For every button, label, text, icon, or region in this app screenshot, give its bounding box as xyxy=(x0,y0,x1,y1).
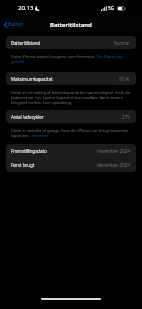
staticText: Først brugt xyxy=(11,162,35,168)
staticText: november 2024 xyxy=(97,148,130,154)
staticText: Batteri xyxy=(8,21,24,28)
staticText: 5G xyxy=(108,5,115,12)
staticText: 95 % xyxy=(119,76,130,82)
button[interactable]: Batteri xyxy=(0,19,29,30)
staticText: 20.13 xyxy=(18,4,34,12)
button[interactable]: Først brugt xyxy=(6,158,136,172)
staticText: Batteritilstand xyxy=(11,40,41,46)
staticText: Normal xyxy=(114,40,130,46)
staticText: december 2024 xyxy=(97,162,130,168)
button[interactable]: Fremstillingsdato xyxy=(6,144,136,158)
staticText: Batteritilstand xyxy=(50,21,92,29)
staticText: Antal ladecykler xyxy=(11,114,44,120)
button[interactable]: Batteritilstand xyxy=(6,36,136,49)
button[interactable]: Antal ladecykler xyxy=(6,110,136,123)
button[interactable]: Maksimumkapacitet xyxy=(6,72,136,85)
staticText: Maksimumkapacitet xyxy=(11,76,53,82)
staticText: Dette iPhone-batteri fungerer som forven… xyxy=(11,54,135,64)
staticText: Fremstillingsdato xyxy=(11,148,47,154)
staticText: 275 xyxy=(122,114,130,120)
staticText: Dette er antallet af gange, hvor din iPh… xyxy=(11,128,135,138)
staticText: Dette er en måling af batterikapaciteten… xyxy=(11,90,135,105)
